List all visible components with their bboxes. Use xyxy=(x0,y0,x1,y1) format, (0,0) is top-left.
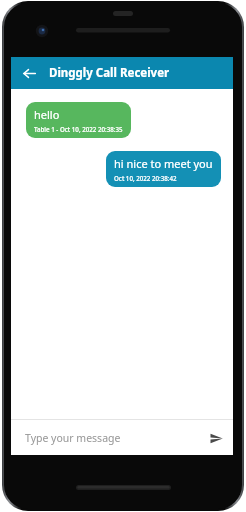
staticText: Type your message xyxy=(25,431,121,445)
button[interactable]: hi nice to meet you xyxy=(106,151,221,187)
staticText: Dinggly Call Receiver xyxy=(49,65,170,81)
staticText: hello xyxy=(34,107,60,122)
staticText: Oct 10, 2022 20:38:42 xyxy=(114,174,177,182)
button[interactable]: Type your message xyxy=(11,420,201,455)
staticText: hi nice to meet you xyxy=(114,156,213,171)
button[interactable]: hello xyxy=(26,102,131,138)
button[interactable]: Back xyxy=(17,61,41,85)
staticText: Table 1 - Oct 10, 2022 20:38:35 xyxy=(34,125,123,133)
button[interactable]: Send xyxy=(201,423,231,453)
